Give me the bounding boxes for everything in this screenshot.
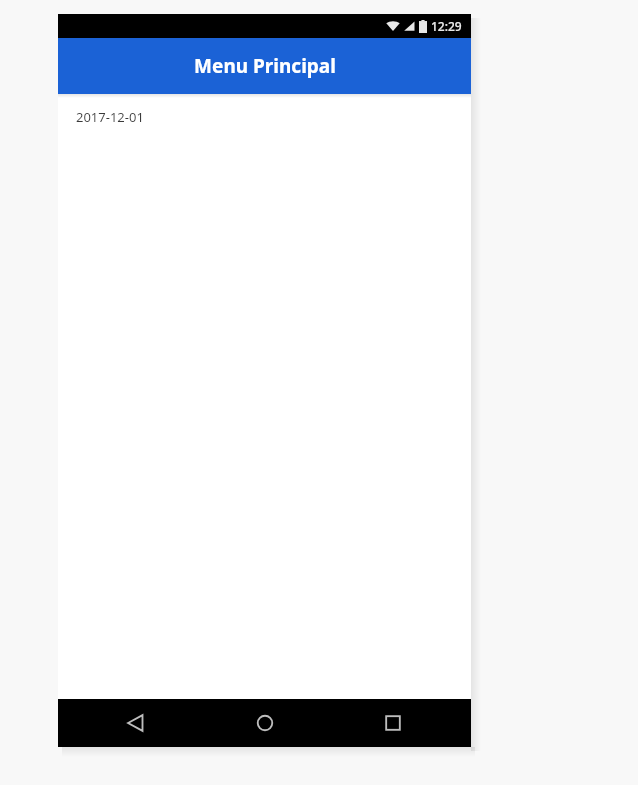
staticText: 12:29 [431,18,462,34]
button[interactable]: Recent apps [343,699,443,747]
button[interactable]: 2017-12-01 [58,94,471,136]
staticText: 2017-12-01 [76,108,144,126]
button[interactable]: Back [86,699,186,747]
staticText: Menu Principal [194,53,336,79]
button[interactable]: Home [215,699,315,747]
